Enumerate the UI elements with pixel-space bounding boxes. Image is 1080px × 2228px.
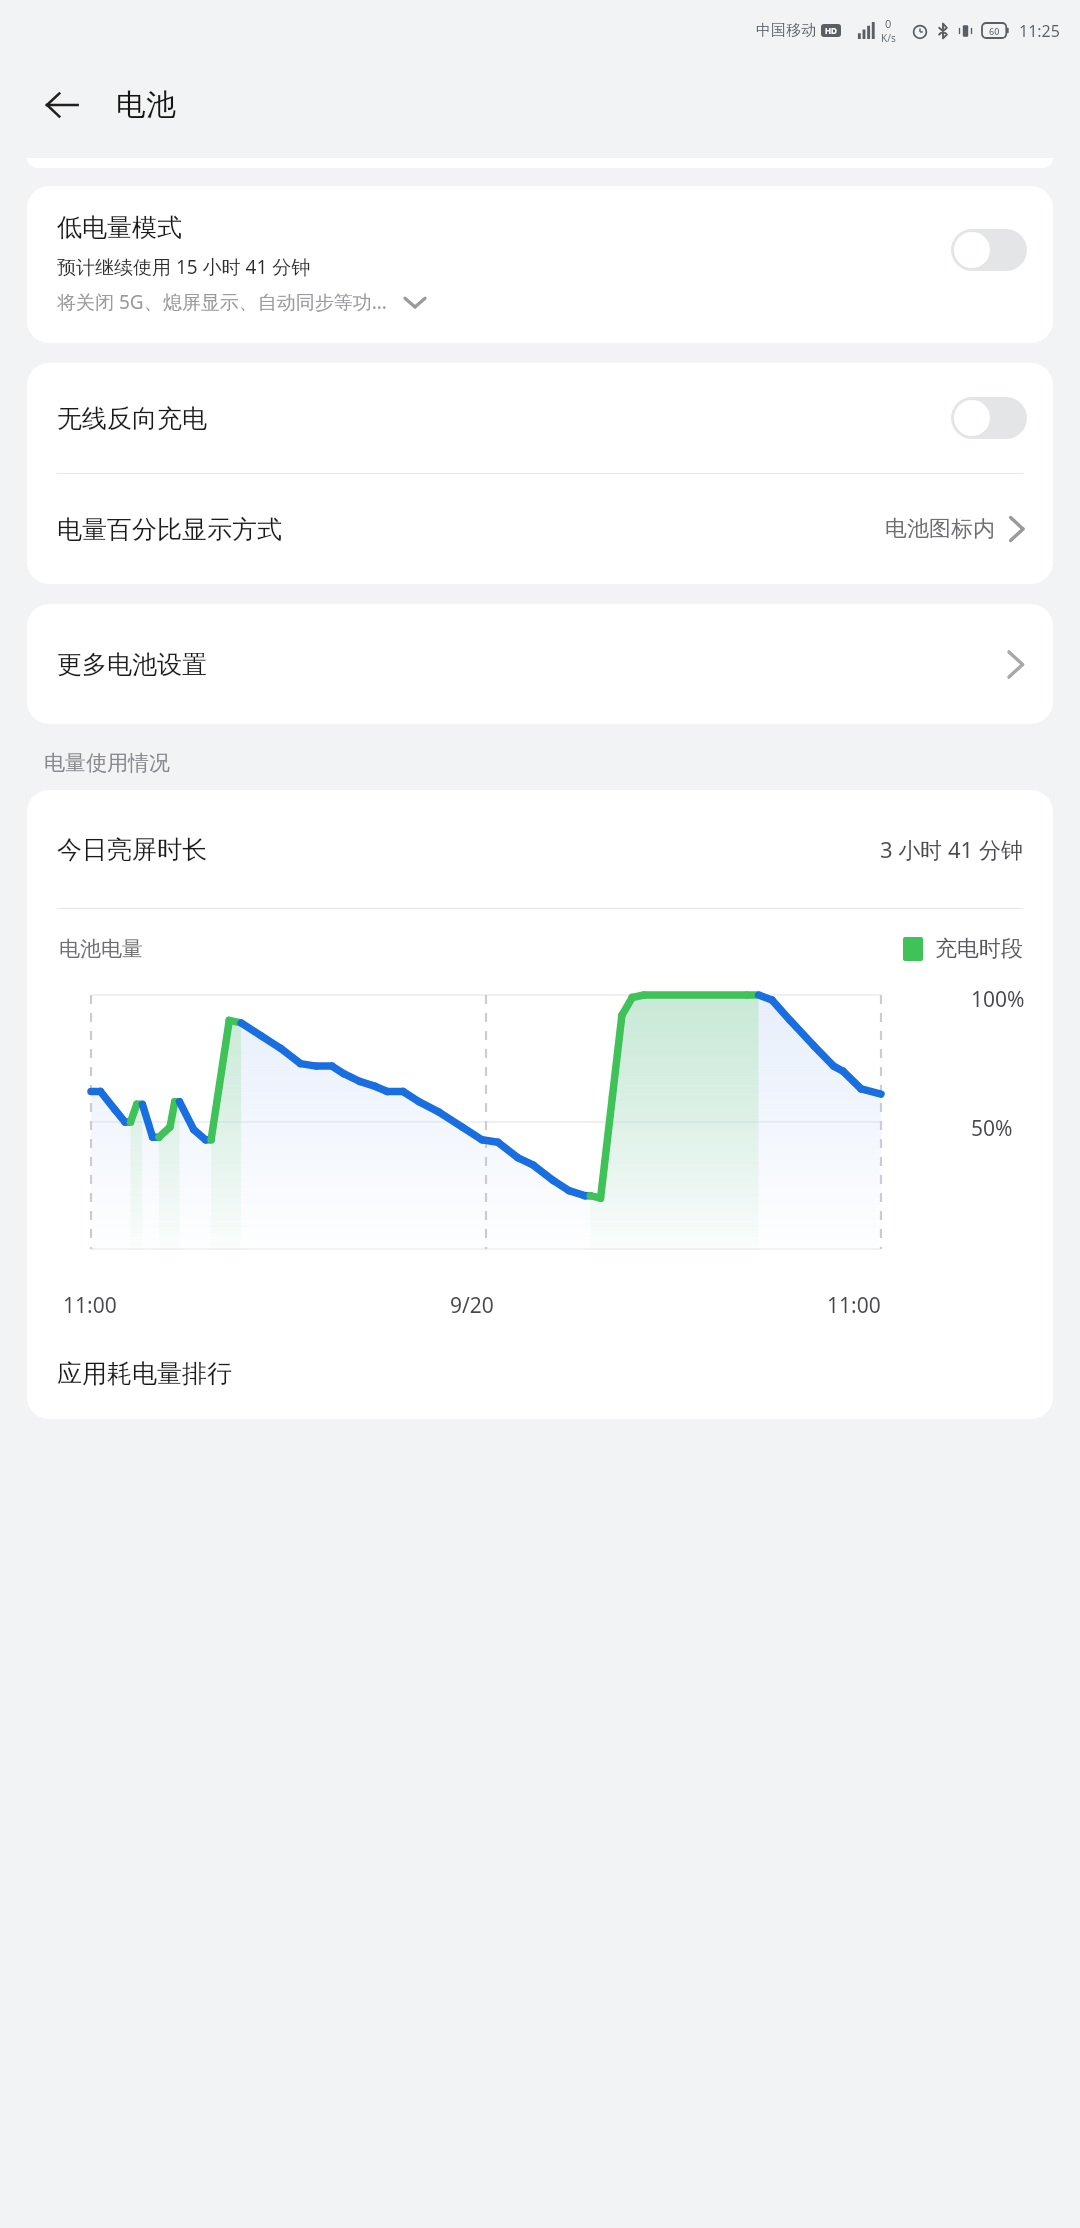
- staticText: 3 小时 41 分钟: [880, 834, 1023, 864]
- staticText: 低电量模式: [57, 212, 182, 243]
- staticText: 0: [885, 16, 892, 31]
- button[interactable]: 今日亮屏时长: [27, 790, 1053, 908]
- button[interactable]: 电量百分比显示方式: [27, 474, 1053, 584]
- staticText: 电量使用情况: [44, 750, 170, 776]
- staticText: 50%: [971, 1114, 1013, 1143]
- staticText: 60: [989, 25, 1000, 37]
- staticText: 9/20: [450, 1291, 494, 1320]
- staticText: 更多电池设置: [57, 649, 1005, 680]
- button[interactable]: Toggle: [951, 397, 1027, 439]
- staticText: 100%: [971, 985, 1025, 1014]
- staticText: 充电时段: [935, 935, 1023, 963]
- staticText: 电池电量: [59, 936, 143, 962]
- staticText: 将关闭 5G、熄屏显示、自动同步等功...: [57, 289, 387, 315]
- button[interactable]: 无线反向充电: [27, 363, 1053, 473]
- staticText: 电池: [116, 86, 176, 124]
- staticText: HD: [825, 25, 837, 36]
- staticText: 电池图标内: [885, 515, 995, 543]
- staticText: 电量百分比显示方式: [57, 514, 885, 545]
- staticText: 今日亮屏时长: [57, 834, 880, 865]
- staticText: 11:25: [1019, 20, 1060, 42]
- staticText: 11:00: [827, 1291, 881, 1320]
- staticText: 无线反向充电: [57, 403, 951, 434]
- button[interactable]: Back: [34, 77, 90, 133]
- staticText: K/s: [881, 31, 896, 45]
- staticText: 预计继续使用 15 小时 41 分钟: [57, 254, 311, 280]
- button[interactable]: Toggle: [951, 229, 1027, 271]
- button[interactable]: 更多电池设置: [27, 604, 1053, 724]
- button[interactable]: 低电量模式: [27, 186, 1053, 343]
- staticText: 中国移动: [756, 21, 816, 40]
- staticText: 应用耗电量排行: [57, 1358, 232, 1389]
- staticText: 11:00: [63, 1291, 117, 1320]
